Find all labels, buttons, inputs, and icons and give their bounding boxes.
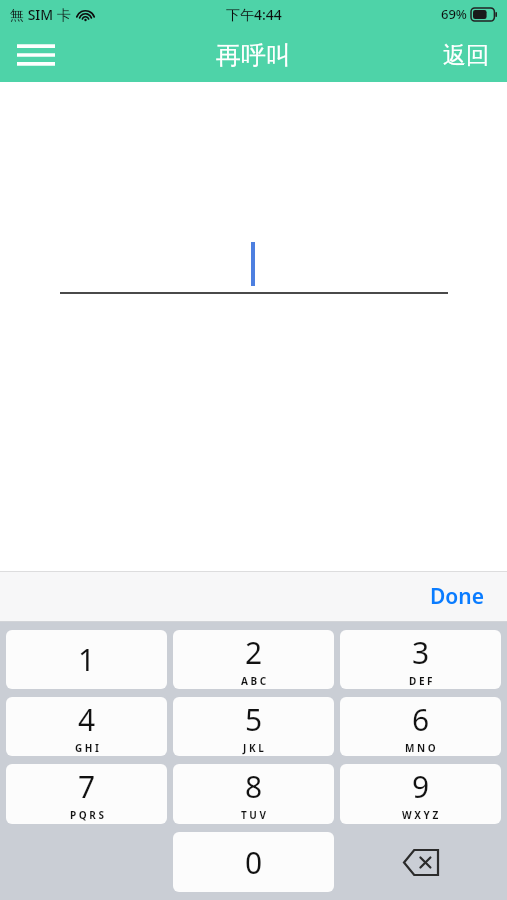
- button[interactable]: 4: [6, 697, 167, 756]
- button[interactable]: 6: [340, 697, 501, 756]
- staticText: P Q R S: [70, 808, 104, 822]
- staticText: D E F: [409, 674, 433, 688]
- staticText: 4: [78, 699, 96, 740]
- button[interactable]: 8: [173, 764, 334, 824]
- staticText: 9: [412, 766, 430, 807]
- staticText: 3: [412, 632, 430, 673]
- staticText: 1: [78, 639, 96, 680]
- staticText: J K L: [243, 741, 264, 755]
- button[interactable]: 7: [6, 764, 167, 824]
- staticText: 7: [78, 766, 96, 807]
- staticText: 69%: [441, 5, 467, 23]
- button[interactable]: 5: [173, 697, 334, 756]
- button[interactable]: 2: [173, 630, 334, 689]
- staticText: W X Y Z: [402, 808, 439, 822]
- staticText: T U V: [241, 808, 267, 822]
- button[interactable]: 0: [173, 832, 334, 892]
- staticText: 2: [245, 632, 263, 673]
- button[interactable]: 9: [340, 764, 501, 824]
- staticText: G H I: [75, 741, 99, 755]
- button[interactable]: Done: [408, 571, 507, 622]
- staticText: 再呼叫: [216, 40, 291, 71]
- staticText: M N O: [405, 741, 436, 755]
- button[interactable]: Backspace: [340, 832, 501, 892]
- staticText: 5: [245, 699, 263, 740]
- button[interactable]: Menu: [6, 28, 66, 82]
- staticText: 0: [245, 842, 263, 883]
- staticText: 無 SIM 卡: [10, 5, 71, 24]
- button[interactable]: 1: [6, 630, 167, 689]
- staticText: A B C: [241, 674, 267, 688]
- button[interactable]: 返回: [425, 28, 507, 82]
- staticText: Done: [430, 582, 485, 611]
- button[interactable]: 3: [340, 630, 501, 689]
- staticText: 8: [245, 766, 263, 807]
- staticText: 下午4:44: [226, 5, 282, 24]
- staticText: 6: [412, 699, 430, 740]
- staticText: 返回: [443, 41, 489, 70]
